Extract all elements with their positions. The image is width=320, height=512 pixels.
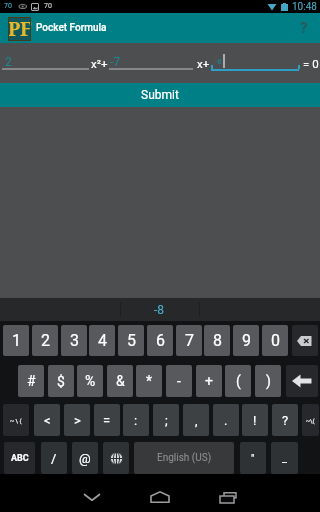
staticText: $ [57, 373, 65, 389]
staticText: ~ \ ( [10, 417, 22, 424]
button[interactable]: ? [272, 404, 298, 436]
staticText: % [85, 373, 96, 389]
staticText: 10:48 [292, 1, 317, 13]
button[interactable]: ? [289, 13, 318, 43]
staticText: 6 [156, 331, 165, 350]
button[interactable]: / [41, 442, 67, 474]
staticText: 2 [5, 55, 12, 69]
button[interactable]: = [94, 404, 120, 436]
button[interactable]: @ [72, 442, 98, 474]
staticText: ? [282, 413, 289, 428]
staticText: & [116, 373, 125, 389]
button[interactable]: > [64, 404, 90, 436]
button[interactable]: * [136, 365, 162, 397]
staticText: _ [282, 452, 287, 465]
button[interactable]: 0 [262, 325, 288, 356]
staticText: 1 [12, 331, 21, 350]
staticText: # [27, 373, 36, 389]
staticText: @ [79, 451, 91, 466]
button[interactable]: , [183, 404, 209, 436]
staticText: 4 [98, 331, 107, 350]
button[interactable]: % [77, 365, 103, 397]
button[interactable]: " [240, 442, 266, 474]
button[interactable]: 3 [61, 325, 87, 356]
staticText: 5 [127, 331, 136, 350]
button[interactable]: English (US) [134, 442, 234, 474]
staticText: ABC [11, 453, 29, 464]
staticText: 7 [185, 331, 194, 350]
button[interactable] [140, 483, 180, 511]
staticText: ? [300, 19, 308, 37]
staticText: 70 [44, 2, 52, 10]
button[interactable] [286, 365, 318, 397]
staticText: 70 [4, 2, 12, 10]
staticText: -8 [154, 303, 165, 317]
staticText: English (US) [157, 452, 212, 464]
button[interactable]: : [123, 404, 149, 436]
staticText: : [134, 413, 138, 428]
button[interactable] [208, 483, 248, 511]
button[interactable]: 8 [204, 325, 230, 356]
button[interactable]: 9 [233, 325, 259, 356]
staticText: < [44, 413, 51, 428]
staticText: 8 [213, 331, 222, 350]
staticText: = 0 [303, 57, 319, 70]
staticText: ) [266, 373, 271, 389]
staticText: x+ [197, 57, 210, 70]
staticText: ~\( [306, 417, 315, 424]
staticText: 0 [271, 331, 280, 350]
button[interactable]: ~\( [302, 404, 319, 436]
staticText: ; [165, 413, 168, 428]
button[interactable]: - [166, 365, 192, 397]
staticText: x²+ [91, 57, 108, 70]
staticText: Pocket Formula [36, 22, 107, 34]
button[interactable]: ; [153, 404, 179, 436]
button[interactable]: & [107, 365, 133, 397]
staticText: -8 [215, 57, 222, 66]
button[interactable]: Submit [0, 83, 320, 107]
button[interactable]: $ [48, 365, 74, 397]
button[interactable]: ) [255, 365, 281, 397]
staticText: . [224, 413, 228, 428]
button[interactable]: ! [242, 404, 268, 436]
staticText: PF [8, 16, 32, 42]
staticText: + [205, 373, 213, 389]
button[interactable]: . [213, 404, 239, 436]
staticText: - [177, 373, 181, 389]
staticText: * [146, 373, 153, 389]
button[interactable]: ~ \ ( [3, 404, 29, 436]
button[interactable]: + [196, 365, 222, 397]
staticText: / [51, 451, 57, 466]
button[interactable]: ABC [4, 442, 35, 474]
staticText: -7 [110, 55, 121, 69]
button[interactable] [292, 325, 318, 356]
button[interactable] [103, 442, 129, 474]
staticText: Submit [141, 88, 179, 102]
button[interactable]: -8 [120, 298, 199, 321]
button[interactable]: 1 [3, 325, 29, 356]
staticText: > [74, 413, 81, 428]
button[interactable]: 4 [89, 325, 115, 356]
staticText: 2 [41, 331, 50, 350]
button[interactable]: < [34, 404, 60, 436]
staticText: 9 [242, 331, 251, 350]
button[interactable]: 6 [147, 325, 173, 356]
button[interactable]: 7 [176, 325, 202, 356]
button[interactable]: _ [271, 442, 298, 474]
button[interactable] [72, 483, 112, 511]
staticText: = [103, 413, 111, 428]
button[interactable]: ( [225, 365, 251, 397]
staticText: " [251, 452, 255, 465]
button[interactable]: 2 [32, 325, 58, 356]
staticText: 3 [70, 331, 79, 350]
staticText: , [195, 413, 198, 428]
staticText: ( [236, 373, 241, 389]
button[interactable]: # [18, 365, 44, 397]
staticText: ! [253, 413, 257, 428]
button[interactable]: 5 [118, 325, 144, 356]
